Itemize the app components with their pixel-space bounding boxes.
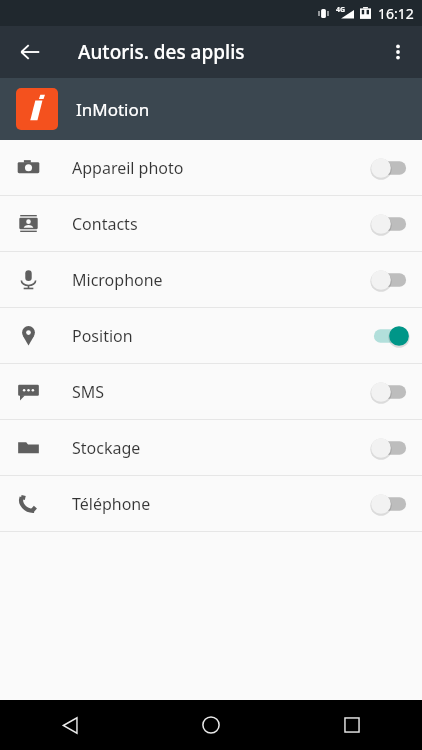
button[interactable]: Contacts [358, 196, 422, 251]
button[interactable]: SMS [0, 364, 422, 419]
button[interactable]: Home [140, 700, 281, 750]
staticText: 4G [336, 5, 346, 15]
button[interactable]: InMotion [0, 78, 422, 140]
staticText: Stockage [72, 437, 141, 459]
button[interactable]: Microphone [0, 252, 422, 307]
staticText: Contacts [72, 213, 138, 235]
button[interactable]: Position [358, 308, 422, 363]
staticText: 16:12 [378, 4, 414, 23]
button[interactable]: Appareil photo [358, 140, 422, 195]
button[interactable]: Recent apps [281, 700, 422, 750]
button[interactable]: Back [0, 700, 140, 750]
button[interactable]: Position [0, 308, 422, 363]
staticText: Téléphone [72, 493, 151, 515]
staticText: InMotion [76, 98, 150, 121]
staticText: Position [72, 325, 133, 347]
button[interactable]: Back [8, 30, 52, 74]
staticText: Autoris. des applis [78, 39, 245, 65]
button[interactable]: More options [376, 30, 420, 74]
staticText: Appareil photo [72, 157, 184, 179]
button[interactable]: Stockage [0, 420, 422, 475]
button[interactable]: Appareil photo [0, 140, 422, 195]
button[interactable]: Contacts [0, 196, 422, 251]
staticText: SMS [72, 381, 105, 403]
staticText: Microphone [72, 269, 163, 291]
button[interactable]: SMS [358, 364, 422, 419]
button[interactable]: Téléphone [0, 476, 422, 531]
button[interactable]: Microphone [358, 252, 422, 307]
button[interactable]: Stockage [358, 420, 422, 475]
button[interactable]: Téléphone [358, 476, 422, 531]
